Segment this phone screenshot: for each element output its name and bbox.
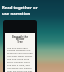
staticText: Read together or use narration: [2, 5, 38, 16]
staticText: The morning light slipped between the br…: [7, 46, 33, 72]
staticText: Beneath the Willow Tree: [10, 35, 30, 44]
